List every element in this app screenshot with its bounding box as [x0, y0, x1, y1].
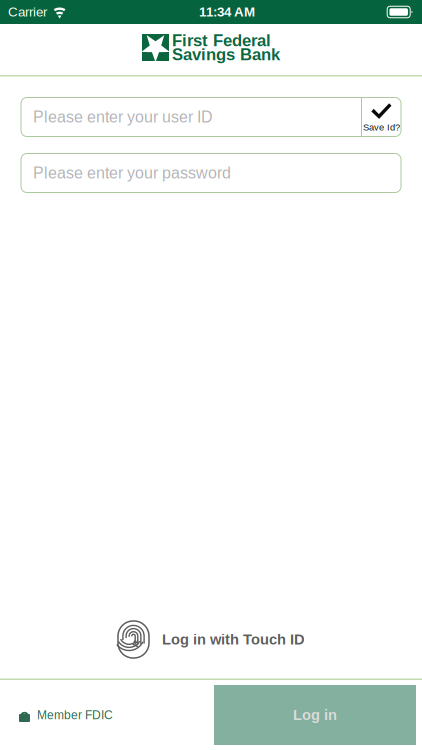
staticText: First Federal [172, 31, 271, 50]
button[interactable]: Save Id? [362, 97, 401, 136]
button[interactable]: Log in [214, 685, 416, 745]
staticText: Log in [293, 707, 337, 723]
staticText: Carrier [8, 5, 47, 19]
button[interactable]: Log in with Touch ID [117, 615, 305, 663]
staticText: Log in with Touch ID [162, 631, 305, 648]
button[interactable]: Please enter your password [0, 153, 422, 192]
staticText: 11:34 AM [199, 5, 255, 19]
staticText: Please enter your password [33, 164, 231, 182]
staticText: Save Id? [363, 122, 400, 132]
button[interactable]: Member FDIC [0, 680, 125, 750]
staticText: Please enter your user ID [33, 108, 213, 126]
staticText: Savings Bank [172, 45, 280, 64]
button[interactable]: Please enter your user ID [21, 97, 361, 136]
staticText: Member FDIC [37, 708, 113, 722]
